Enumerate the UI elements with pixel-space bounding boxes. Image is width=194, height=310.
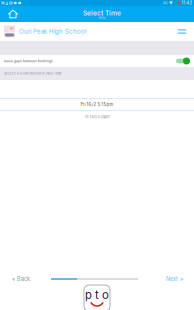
button[interactable]: Next »	[157, 273, 183, 285]
staticText: Fri 16/3 5:28pm	[84, 115, 109, 119]
button[interactable]: Fri 16/3 5:28pm	[0, 111, 194, 123]
button[interactable]: « Back	[12, 273, 38, 285]
staticText: p t o	[85, 288, 109, 302]
staticText: SELECT A STARTING DATE AND TIME	[4, 71, 62, 75]
staticText: 11:42	[181, 0, 192, 6]
staticText: ···	[174, 1, 177, 5]
staticText: Select Time	[83, 9, 121, 17]
staticText: Fri 16/2 5:15pm	[80, 102, 113, 107]
button[interactable]: leave gaps between bookings	[0, 55, 194, 67]
staticText: 4G	[163, 1, 168, 5]
staticText: Ouri Peak High School	[19, 28, 86, 35]
staticText: leave gaps between bookings	[4, 59, 53, 63]
button[interactable]: Home	[3, 6, 23, 22]
staticText: Next »	[166, 276, 183, 282]
button[interactable]: Fri 16/2 5:15pm	[0, 99, 194, 110]
staticText: Help	[98, 16, 105, 20]
staticText: « Back	[12, 276, 30, 282]
button[interactable]: Menu	[174, 24, 190, 38]
